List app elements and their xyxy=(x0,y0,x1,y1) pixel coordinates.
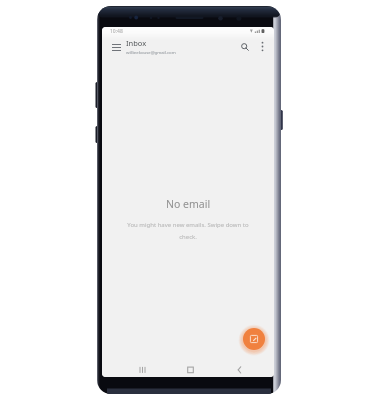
button[interactable]: Recent apps xyxy=(132,361,152,377)
button[interactable]: Open navigation drawer xyxy=(107,37,126,56)
button[interactable]: Home xyxy=(180,361,200,377)
button[interactable]: Compose xyxy=(243,328,265,350)
staticText: Inbox xyxy=(126,38,147,48)
staticText: No email xyxy=(166,197,211,211)
button[interactable]: Back xyxy=(229,361,249,377)
staticText: 10:48 xyxy=(110,28,123,35)
button[interactable]: More options xyxy=(253,37,272,56)
staticText: willieekouse@gmail.com xyxy=(126,49,176,55)
staticText: You might have new emails. Swipe down to… xyxy=(124,221,252,240)
button[interactable]: Search xyxy=(235,37,254,56)
